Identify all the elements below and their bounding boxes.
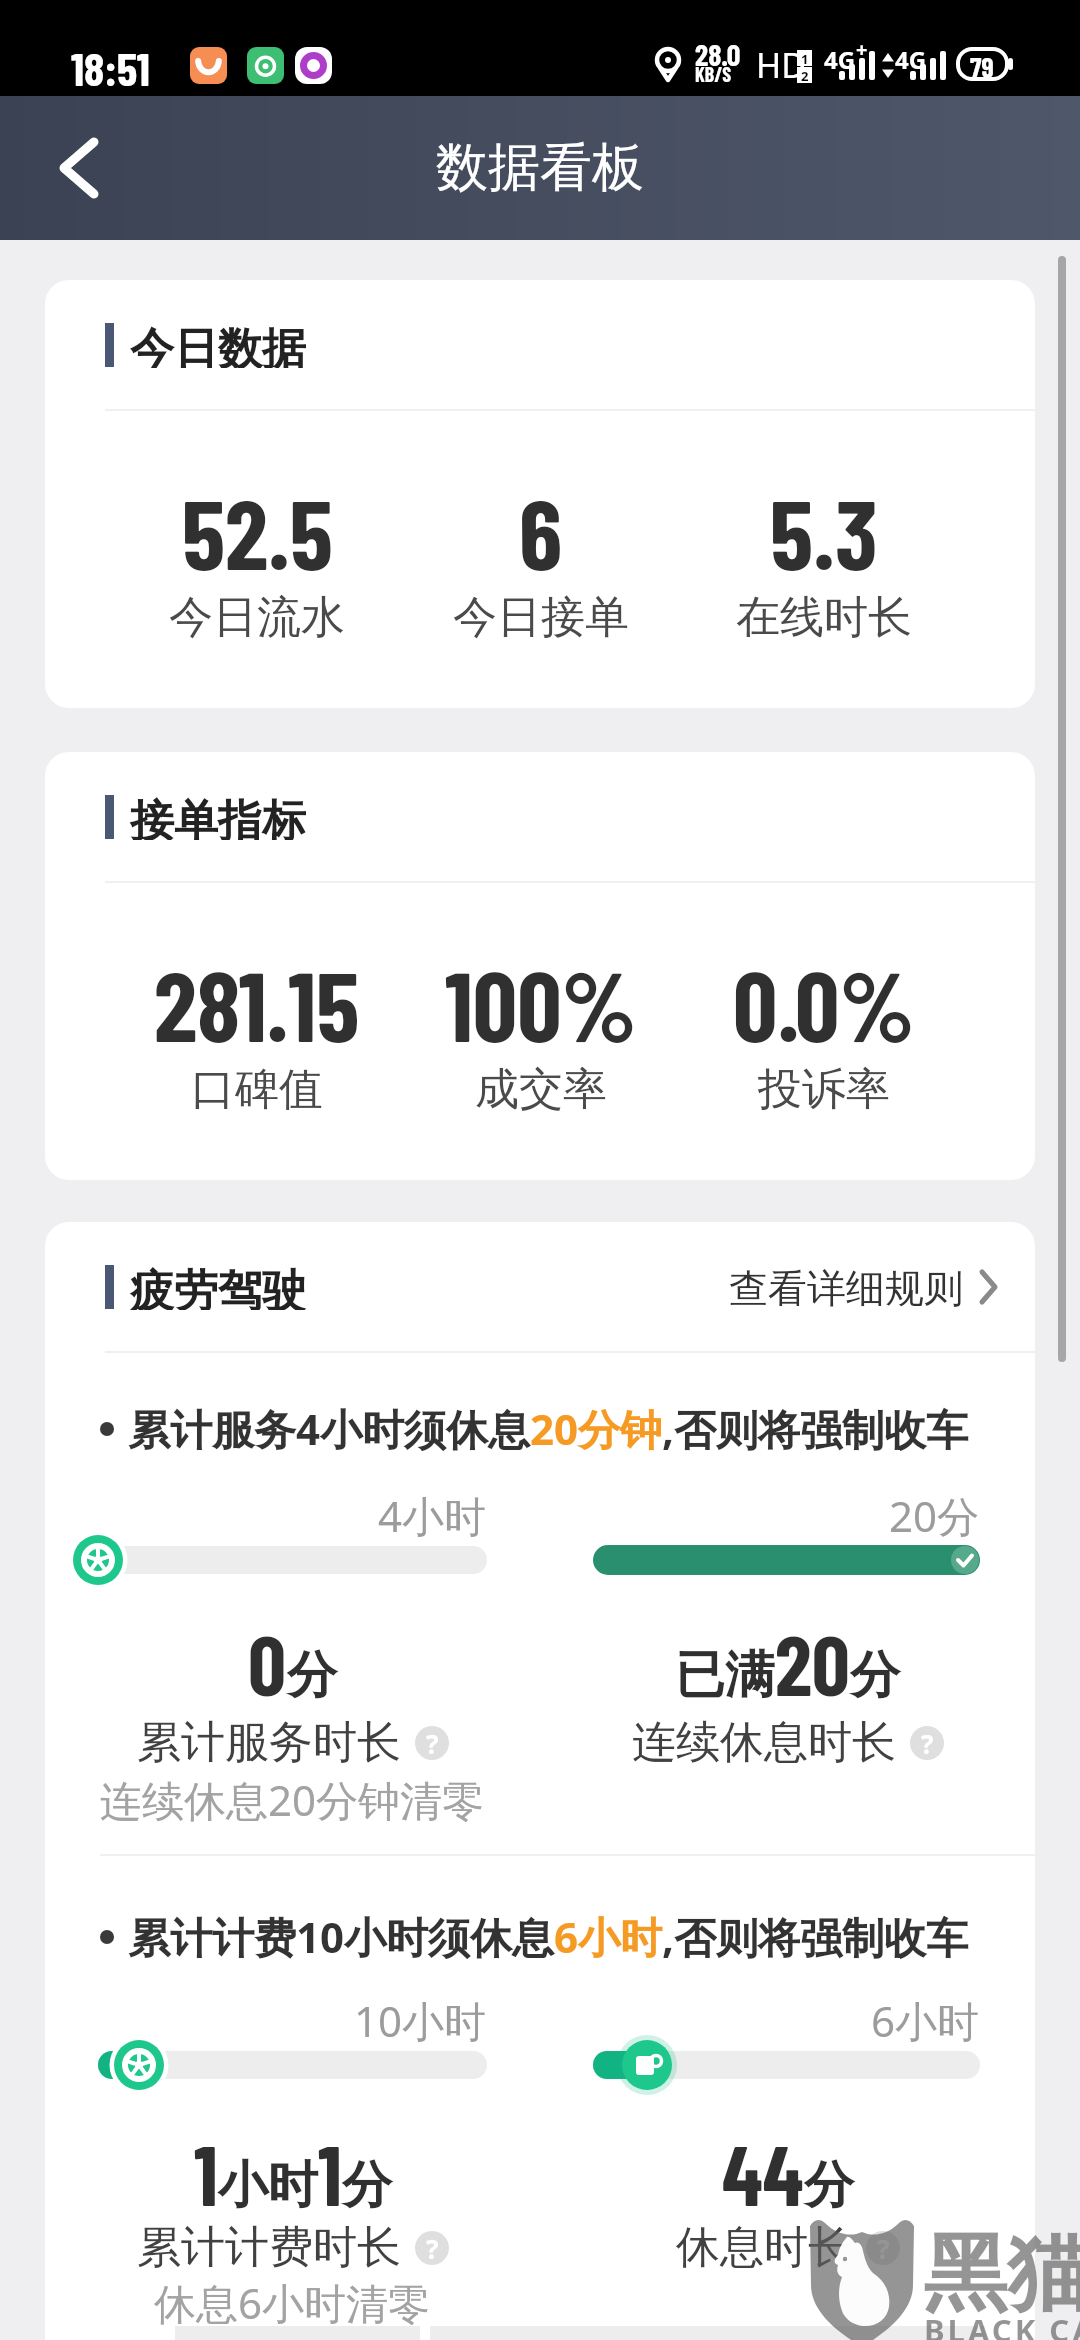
staticText: 79	[970, 50, 994, 84]
staticText: 20	[775, 1612, 850, 1713]
staticText: 小时	[218, 2154, 318, 2217]
staticText: 0	[248, 1612, 287, 1713]
staticText: 20分	[889, 1487, 980, 1544]
staticText: 0.0%	[733, 944, 915, 1062]
staticText: 分	[804, 2154, 854, 2217]
staticText: 6	[519, 472, 563, 590]
staticText: 2	[801, 67, 809, 83]
staticText: ?	[426, 2231, 439, 2265]
staticText: 10小时	[354, 1992, 487, 2049]
staticText: 在线时长	[736, 590, 912, 645]
staticText: 今日流水	[169, 590, 345, 645]
staticText: ?	[921, 1726, 934, 1760]
staticText: 连续休息20分钟清零	[100, 1771, 485, 1828]
staticText: 5.3	[770, 472, 878, 590]
staticText: 成交率	[475, 1062, 607, 1117]
staticText: 4G	[824, 43, 856, 76]
staticText: HD	[756, 42, 807, 88]
staticText: ?	[877, 2231, 890, 2265]
staticText: 1	[194, 2122, 218, 2223]
button[interactable]	[30, 120, 126, 216]
staticText: 累计服务时长	[137, 1715, 401, 1770]
staticText: 281.15	[154, 944, 360, 1062]
staticText: KB/S	[695, 62, 732, 86]
staticText: 4G	[895, 43, 927, 76]
staticText: 18:51	[71, 40, 150, 95]
staticText: +	[856, 36, 868, 63]
staticText: 已满	[675, 1644, 775, 1707]
staticText: 1	[801, 50, 809, 66]
staticText: ?	[426, 1726, 439, 1760]
staticText: 口碑值	[191, 1062, 323, 1117]
staticText: 数据看板	[436, 135, 644, 201]
staticText: 分	[342, 2154, 392, 2217]
staticText: 黑猫	[923, 2221, 1080, 2327]
staticText: 累计服务4小时须休息20分钟,否则将强制收车	[128, 1400, 969, 1457]
staticText: 投诉率	[758, 1062, 890, 1117]
staticText: 连续休息时长	[632, 1715, 896, 1770]
staticText: 累计计费时长	[137, 2220, 401, 2275]
staticText: 接单指标	[130, 794, 306, 840]
staticText: 1	[318, 2122, 342, 2223]
staticText: 疲劳驾驶	[130, 1264, 306, 1310]
staticText: 今日接单	[453, 590, 629, 645]
staticText: 4小时	[378, 1487, 487, 1544]
staticText: 28.0	[695, 36, 741, 72]
staticText: 6小时	[871, 1992, 980, 2049]
staticText: 分	[287, 1644, 337, 1707]
staticText: 44	[722, 2122, 804, 2223]
staticText: 100%	[445, 944, 637, 1062]
staticText: BLACK CAT	[924, 2309, 1080, 2340]
staticText: 52.5	[182, 472, 333, 590]
staticText: 休息时长	[676, 2220, 852, 2275]
button[interactable]: 查看详细规则	[729, 1264, 1000, 1310]
staticText: 分	[850, 1644, 900, 1707]
staticText: 今日数据	[130, 322, 306, 368]
staticText: 累计计费10小时须休息6小时,否则将强制收车	[128, 1908, 969, 1965]
staticText: 查看详细规则	[729, 1264, 963, 1310]
staticText: 休息6小时清零	[154, 2274, 431, 2331]
